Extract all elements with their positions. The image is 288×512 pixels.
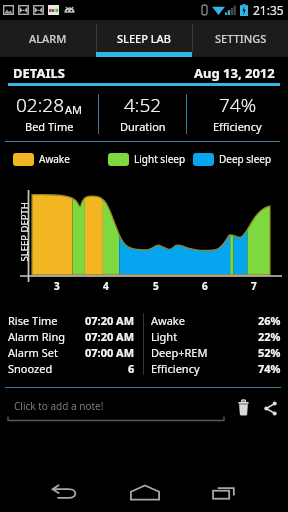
staticText: Deep+REM (151, 345, 208, 360)
staticText: Alarm Set (8, 345, 58, 360)
staticText: 7 (251, 279, 257, 293)
staticText: Deep sleep (219, 152, 272, 166)
staticText: SLEEP LAB (117, 31, 172, 46)
staticText: 21:35 (253, 2, 284, 18)
staticText: 3 (54, 279, 60, 293)
staticText: 02:28 (16, 92, 65, 118)
staticText: 52% (258, 345, 281, 360)
staticText: Bed Time (25, 119, 74, 134)
staticText: 07:20 AM (85, 329, 135, 344)
staticText: 74% (258, 361, 281, 376)
staticText: Aug 13, 2012 (194, 64, 275, 82)
button[interactable]: Recent apps (205, 478, 245, 506)
staticText: ALARM (29, 31, 67, 46)
staticText: DETAILS (13, 64, 65, 82)
staticText: 6 (128, 361, 135, 376)
button[interactable]: SLEEP LAB (97, 20, 192, 57)
staticText: AM (65, 102, 83, 117)
button[interactable]: Delete (232, 398, 254, 418)
button[interactable]: Home (125, 478, 165, 506)
staticText: 07:00 AM (85, 345, 135, 360)
button[interactable]: ALARM (0, 20, 96, 57)
staticText: SLEEP DEPTH (17, 201, 30, 261)
staticText: 6 (202, 279, 208, 293)
staticText: Light sleep (134, 152, 186, 166)
staticText: 5 (153, 279, 159, 293)
button[interactable]: Share (259, 398, 281, 418)
staticText: Rise Time (8, 313, 58, 328)
staticText: 22% (258, 329, 281, 344)
button[interactable]: Back (44, 478, 84, 506)
staticText: 4 (103, 279, 109, 293)
staticText: 4:52 (124, 92, 162, 118)
staticText: Efficiency (151, 361, 200, 376)
staticText: Efficiency (213, 119, 262, 134)
staticText: Duration (120, 119, 166, 134)
staticText: Alarm Ring (8, 329, 65, 344)
staticText: Awake (39, 152, 70, 166)
staticText: Snoozed (8, 361, 53, 376)
button[interactable]: SETTINGS (193, 20, 288, 57)
staticText: SETTINGS (215, 31, 267, 46)
staticText: 07:20 AM (85, 313, 135, 328)
staticText: Light (151, 329, 178, 344)
staticText: 26% (258, 313, 281, 328)
button[interactable]: Click to add a note! (7, 398, 225, 421)
staticText: Awake (151, 313, 185, 328)
staticText: Click to add a note! (14, 399, 104, 413)
staticText: 74% (219, 92, 257, 118)
